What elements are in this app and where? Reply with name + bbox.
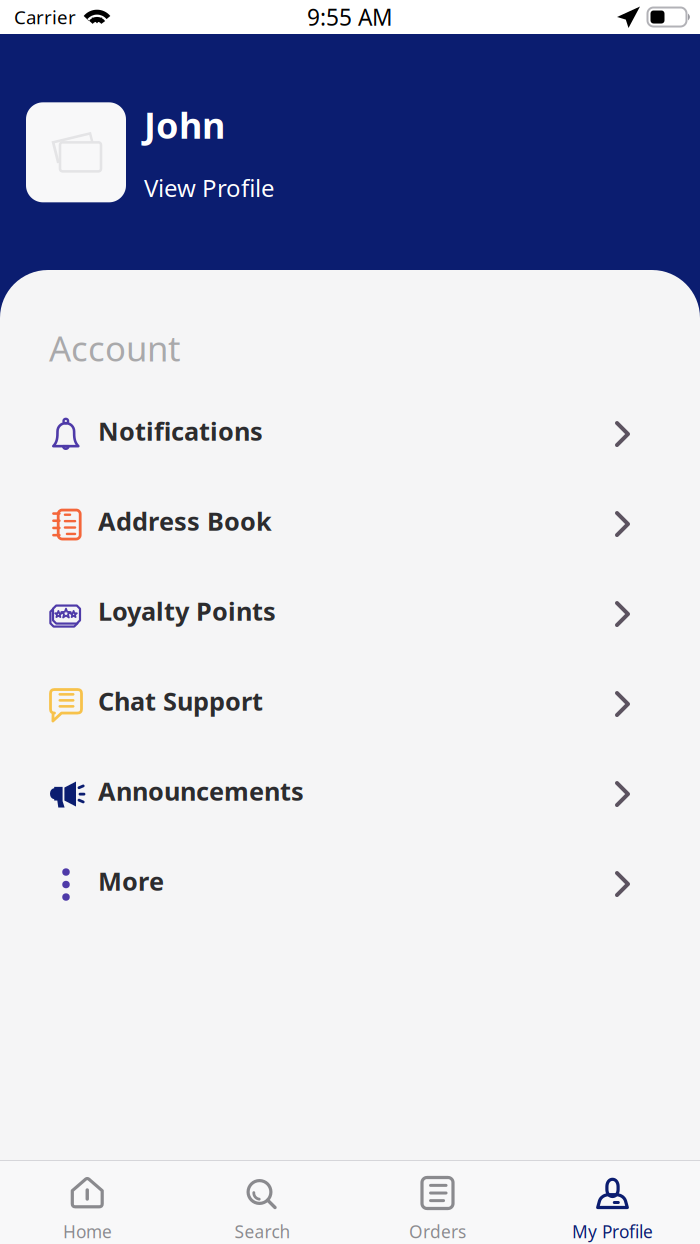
staticText: Home xyxy=(63,1220,112,1243)
staticText: Carrier xyxy=(14,5,76,29)
button[interactable]: Address Book xyxy=(0,476,700,566)
staticText: Search xyxy=(234,1220,290,1243)
button[interactable]: John xyxy=(0,34,700,270)
staticText: John xyxy=(144,101,225,149)
staticText: Orders xyxy=(409,1220,466,1243)
staticText: My Profile xyxy=(572,1220,653,1243)
button[interactable]: Notifications xyxy=(0,386,700,476)
staticText: Loyalty Points xyxy=(98,594,276,628)
button[interactable]: Home xyxy=(0,1161,175,1244)
button[interactable]: My Profile xyxy=(525,1161,700,1244)
staticText: Notifications xyxy=(98,414,263,448)
button[interactable]: Orders xyxy=(350,1161,525,1244)
staticText: Announcements xyxy=(98,774,304,808)
staticText: 9:55 AM xyxy=(307,2,393,32)
button[interactable]: Chat Support xyxy=(0,656,700,746)
staticText: Chat Support xyxy=(98,684,263,718)
button[interactable]: Search xyxy=(175,1161,350,1244)
staticText: Address Book xyxy=(98,504,272,538)
staticText: View Profile xyxy=(144,172,275,204)
staticText: Account xyxy=(49,325,181,371)
staticText: More xyxy=(98,864,164,898)
button[interactable]: Loyalty Points xyxy=(0,566,700,656)
button[interactable]: Announcements xyxy=(0,746,700,836)
button[interactable]: More xyxy=(0,836,700,926)
